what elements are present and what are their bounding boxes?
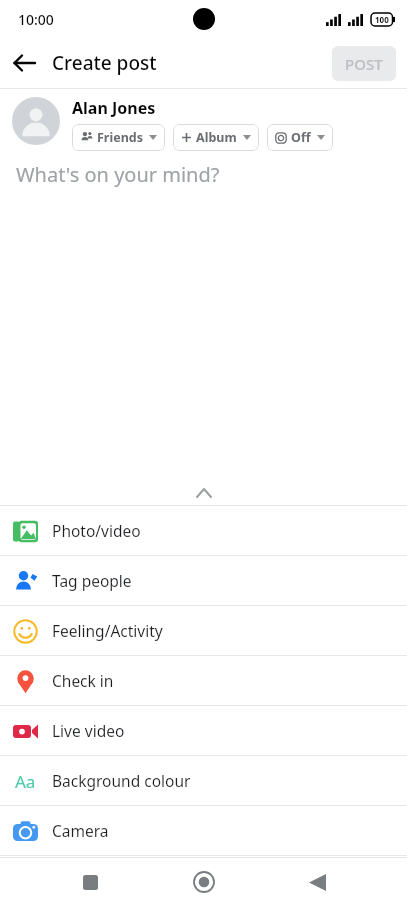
- staticText: 10:00: [18, 10, 54, 29]
- button[interactable]: Live video: [0, 706, 407, 755]
- staticText: Background colour: [52, 770, 191, 791]
- staticText: POST: [345, 54, 383, 74]
- staticText: Camera: [52, 820, 109, 841]
- button[interactable]: GIF: [0, 856, 407, 905]
- button[interactable]: Album: [173, 124, 259, 151]
- staticText: Aa: [15, 770, 36, 793]
- button[interactable]: Camera: [0, 806, 407, 855]
- staticText: Check in: [52, 670, 114, 691]
- button[interactable]: Off: [267, 124, 333, 151]
- staticText: Friends: [97, 129, 143, 146]
- staticText: Photo/video: [52, 520, 141, 541]
- button[interactable]: Feeling/Activity: [0, 606, 407, 655]
- staticText: 100: [375, 14, 389, 25]
- button[interactable]: Aa: [0, 756, 407, 805]
- button[interactable]: Check in: [0, 656, 407, 705]
- button[interactable]: Recents: [66, 858, 114, 906]
- staticText: Live video: [52, 720, 125, 741]
- button[interactable]: POST: [332, 46, 396, 81]
- staticText: Alan Jones: [72, 97, 156, 119]
- staticText: Create post: [52, 50, 157, 76]
- button[interactable]: Photo/video: [0, 506, 407, 555]
- staticText: What's on your mind?: [16, 161, 220, 188]
- button[interactable]: Back: [293, 858, 341, 906]
- button[interactable]: Back: [0, 39, 48, 87]
- staticText: Tag people: [52, 570, 132, 591]
- button[interactable]: Tag people: [0, 556, 407, 605]
- button[interactable]: Collapse: [0, 481, 407, 505]
- staticText: Album: [196, 129, 237, 146]
- staticText: Feeling/Activity: [52, 620, 163, 641]
- staticText: Off: [291, 129, 311, 146]
- button[interactable]: Home: [180, 858, 228, 906]
- button[interactable]: Friends: [72, 124, 165, 151]
